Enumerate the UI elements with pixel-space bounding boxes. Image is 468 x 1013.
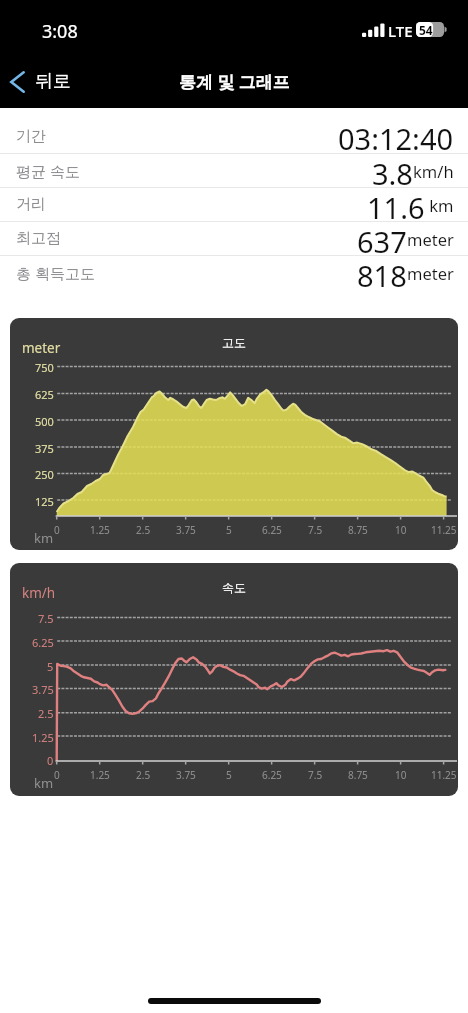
staticText: 6.25 bbox=[32, 635, 54, 650]
staticText: 최고점 bbox=[16, 229, 61, 248]
staticText: 10 bbox=[395, 523, 407, 537]
button[interactable]: 거리 bbox=[0, 188, 468, 221]
staticText: km bbox=[34, 529, 54, 547]
staticText: 총 획득고도 bbox=[16, 263, 95, 283]
staticText: 거리 bbox=[16, 195, 46, 214]
staticText: 8.75 bbox=[348, 523, 368, 537]
staticText: 통계 및 그래프 bbox=[179, 70, 290, 93]
staticText: km/h bbox=[22, 584, 56, 602]
button[interactable]: 고도 bbox=[10, 318, 458, 550]
staticText: 250 bbox=[35, 467, 54, 482]
staticText: 10 bbox=[395, 768, 407, 782]
staticText: 54 bbox=[419, 22, 433, 38]
staticText: km bbox=[425, 194, 454, 216]
staticText: 11.25 bbox=[431, 768, 457, 782]
staticText: 0 bbox=[47, 753, 54, 768]
staticText: km/h bbox=[413, 160, 454, 182]
staticText: 637 bbox=[357, 222, 407, 255]
staticText: 3.8 bbox=[372, 154, 413, 187]
staticText: 750 bbox=[35, 360, 54, 375]
button[interactable]: 평균 속도 bbox=[0, 154, 468, 187]
button[interactable]: 기간 bbox=[0, 119, 468, 153]
staticText: 11.25 bbox=[431, 523, 457, 537]
button[interactable]: 최고점 bbox=[0, 222, 468, 255]
staticText: 뒤로 bbox=[35, 70, 71, 93]
staticText: 375 bbox=[35, 441, 54, 456]
staticText: 3.75 bbox=[176, 523, 196, 537]
staticText: 5 bbox=[226, 768, 232, 782]
staticText: 7.5 bbox=[308, 523, 323, 537]
staticText: 11.6 bbox=[367, 188, 425, 221]
staticText: 6.25 bbox=[262, 768, 282, 782]
staticText: 6.25 bbox=[262, 523, 282, 537]
staticText: 625 bbox=[35, 387, 54, 402]
staticText: 기간 bbox=[16, 127, 46, 146]
button[interactable]: 총 획득고도 bbox=[0, 256, 468, 289]
staticText: meter bbox=[407, 262, 454, 284]
button[interactable]: 뒤로 bbox=[6, 67, 75, 96]
staticText: 1.25 bbox=[90, 523, 110, 537]
staticText: 2.5 bbox=[38, 706, 54, 721]
staticText: 0 bbox=[54, 768, 60, 782]
staticText: 7.5 bbox=[38, 611, 54, 626]
staticText: meter bbox=[407, 228, 454, 250]
staticText: 125 bbox=[35, 494, 54, 509]
staticText: 5 bbox=[226, 523, 232, 537]
staticText: 0 bbox=[54, 523, 60, 537]
staticText: km bbox=[34, 774, 54, 792]
staticText: meter bbox=[22, 339, 61, 357]
staticText: 고도 bbox=[222, 335, 246, 350]
staticText: 2.5 bbox=[136, 768, 151, 782]
staticText: 속도 bbox=[222, 580, 246, 595]
staticText: 5 bbox=[47, 659, 54, 674]
staticText: 500 bbox=[35, 414, 54, 429]
staticText: 1.25 bbox=[90, 768, 110, 782]
staticText: 1.25 bbox=[32, 730, 54, 745]
staticText: 8.75 bbox=[348, 768, 368, 782]
staticText: 3:08 bbox=[42, 19, 78, 44]
staticText: 03:12:40 bbox=[338, 119, 454, 153]
staticText: 평균 속도 bbox=[16, 161, 80, 181]
staticText: 3.75 bbox=[32, 682, 54, 697]
staticText: 7.5 bbox=[308, 768, 323, 782]
staticText: 2.5 bbox=[136, 523, 151, 537]
staticText: 3.75 bbox=[176, 768, 196, 782]
button[interactable]: 속도 bbox=[10, 563, 458, 796]
staticText: 818 bbox=[357, 256, 407, 289]
staticText: LTE bbox=[388, 21, 413, 41]
